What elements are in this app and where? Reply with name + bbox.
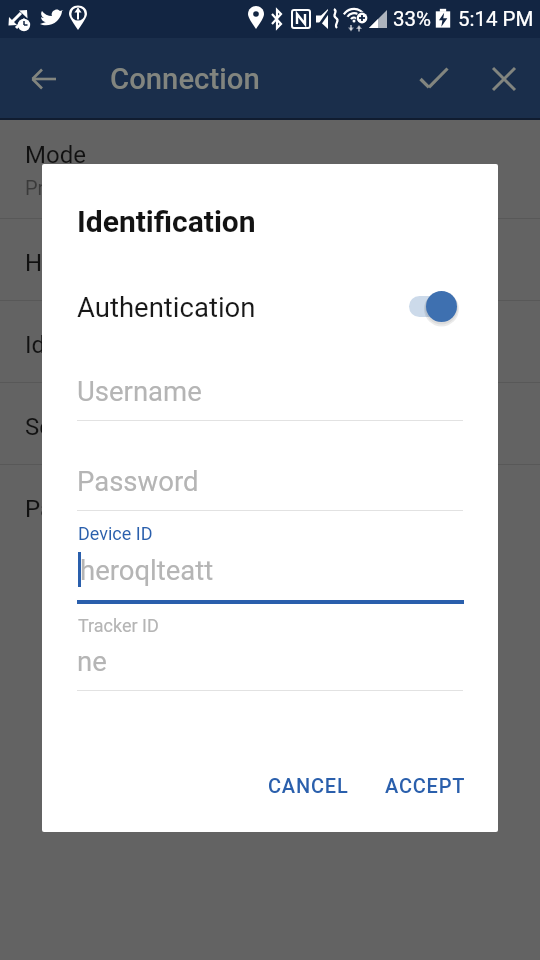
staticText: heroqlteatt — [80, 554, 214, 586]
staticText: Connection — [110, 62, 260, 96]
button[interactable]: H — [0, 219, 540, 300]
button[interactable]: Back — [24, 59, 64, 99]
button[interactable]: Mode — [0, 120, 540, 218]
button[interactable]: Se — [0, 383, 540, 464]
button[interactable]: Close — [481, 56, 527, 102]
staticText: Pr — [25, 176, 45, 199]
staticText: Mode — [25, 141, 86, 169]
staticText: CANCEL — [268, 774, 349, 797]
staticText: Tracker ID — [78, 615, 159, 636]
staticText: Authentication — [77, 291, 256, 323]
staticText: Id — [25, 331, 46, 359]
button[interactable]: Pa — [0, 465, 540, 546]
staticText: Password — [77, 465, 199, 497]
staticText: 5:14 PM — [458, 7, 534, 31]
staticText: Device ID — [78, 523, 153, 544]
staticText: Pa — [25, 495, 54, 523]
button[interactable]: Authentication toggle — [409, 286, 471, 327]
staticText: ne — [77, 645, 107, 677]
staticText: Identification — [77, 204, 256, 239]
button[interactable]: CANCEL — [254, 764, 363, 807]
button[interactable]: Confirm — [411, 56, 457, 102]
button[interactable]: ACCEPT — [371, 764, 480, 807]
staticText: ACCEPT — [385, 774, 466, 797]
button[interactable]: Id — [0, 301, 540, 382]
staticText: Se — [25, 413, 52, 441]
staticText: Username — [77, 375, 202, 407]
staticText: 33% — [393, 7, 432, 31]
staticText: H — [25, 249, 43, 277]
